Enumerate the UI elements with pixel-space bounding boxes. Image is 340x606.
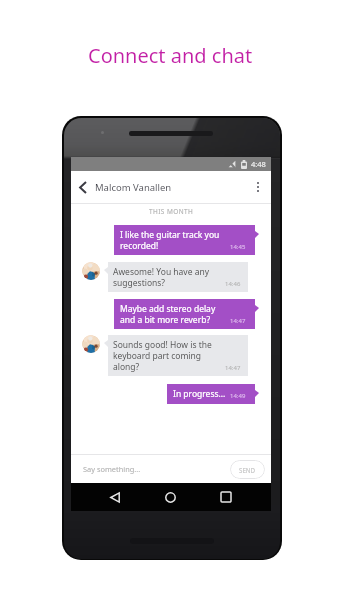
staticText: In progress... bbox=[173, 388, 226, 400]
button[interactable]: Back bbox=[71, 171, 95, 203]
staticText: 4:48 bbox=[251, 159, 266, 169]
staticText: I like the guitar track you recorded! bbox=[120, 229, 226, 251]
staticText: 14:49 bbox=[230, 392, 246, 400]
staticText: SEND bbox=[239, 466, 256, 474]
button[interactable]: More options bbox=[246, 171, 270, 203]
button[interactable]: SEND bbox=[230, 460, 265, 479]
button[interactable]: In progress... bbox=[167, 384, 255, 404]
staticText: 14:47 bbox=[225, 364, 241, 372]
button[interactable]: Sounds good! How is the keyboard part co… bbox=[108, 335, 248, 376]
staticText: Malcom Vanallen bbox=[95, 181, 172, 194]
button[interactable]: Home bbox=[159, 483, 181, 511]
button[interactable]: Awesome! You have any suggestions? bbox=[108, 262, 248, 292]
staticText: Sounds good! How is the keyboard part co… bbox=[113, 339, 221, 372]
button[interactable]: Maybe add stereo delay and a bit more re… bbox=[114, 299, 255, 329]
staticText: Connect and chat bbox=[88, 42, 253, 69]
staticText: Maybe add stereo delay and a bit more re… bbox=[120, 303, 226, 325]
staticText: Say something... bbox=[83, 464, 141, 474]
button[interactable]: Back bbox=[104, 483, 126, 511]
staticText: 14:45 bbox=[230, 243, 246, 251]
staticText: Awesome! You have any suggestions? bbox=[113, 266, 221, 288]
button[interactable]: I like the guitar track you recorded! bbox=[114, 225, 255, 255]
staticText: 14:46 bbox=[225, 280, 241, 288]
button[interactable]: Recent apps bbox=[215, 483, 237, 511]
staticText: THIS MONTH bbox=[149, 207, 194, 216]
staticText: 14:47 bbox=[230, 317, 246, 325]
